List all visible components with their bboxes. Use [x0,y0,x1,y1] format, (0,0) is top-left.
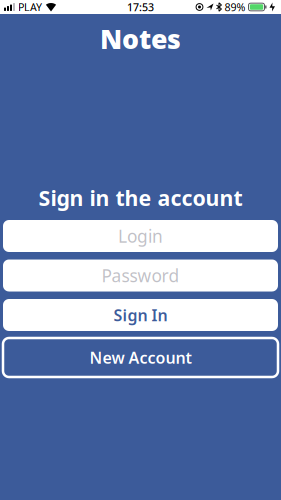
button[interactable]: New Account [3,338,278,377]
staticText: PLAY [18,0,42,14]
staticText: Sign In [113,304,167,326]
staticText: Password [101,264,179,287]
button[interactable]: Login [3,220,278,252]
staticText: Login [118,224,163,247]
staticText: Sign in the account [38,184,242,212]
button[interactable]: Sign In [3,299,278,331]
staticText: 17:53 [127,0,154,14]
staticText: 89% [224,0,245,14]
staticText: New Account [89,347,191,368]
button[interactable]: Password [3,259,278,291]
staticText: Notes [100,21,181,56]
